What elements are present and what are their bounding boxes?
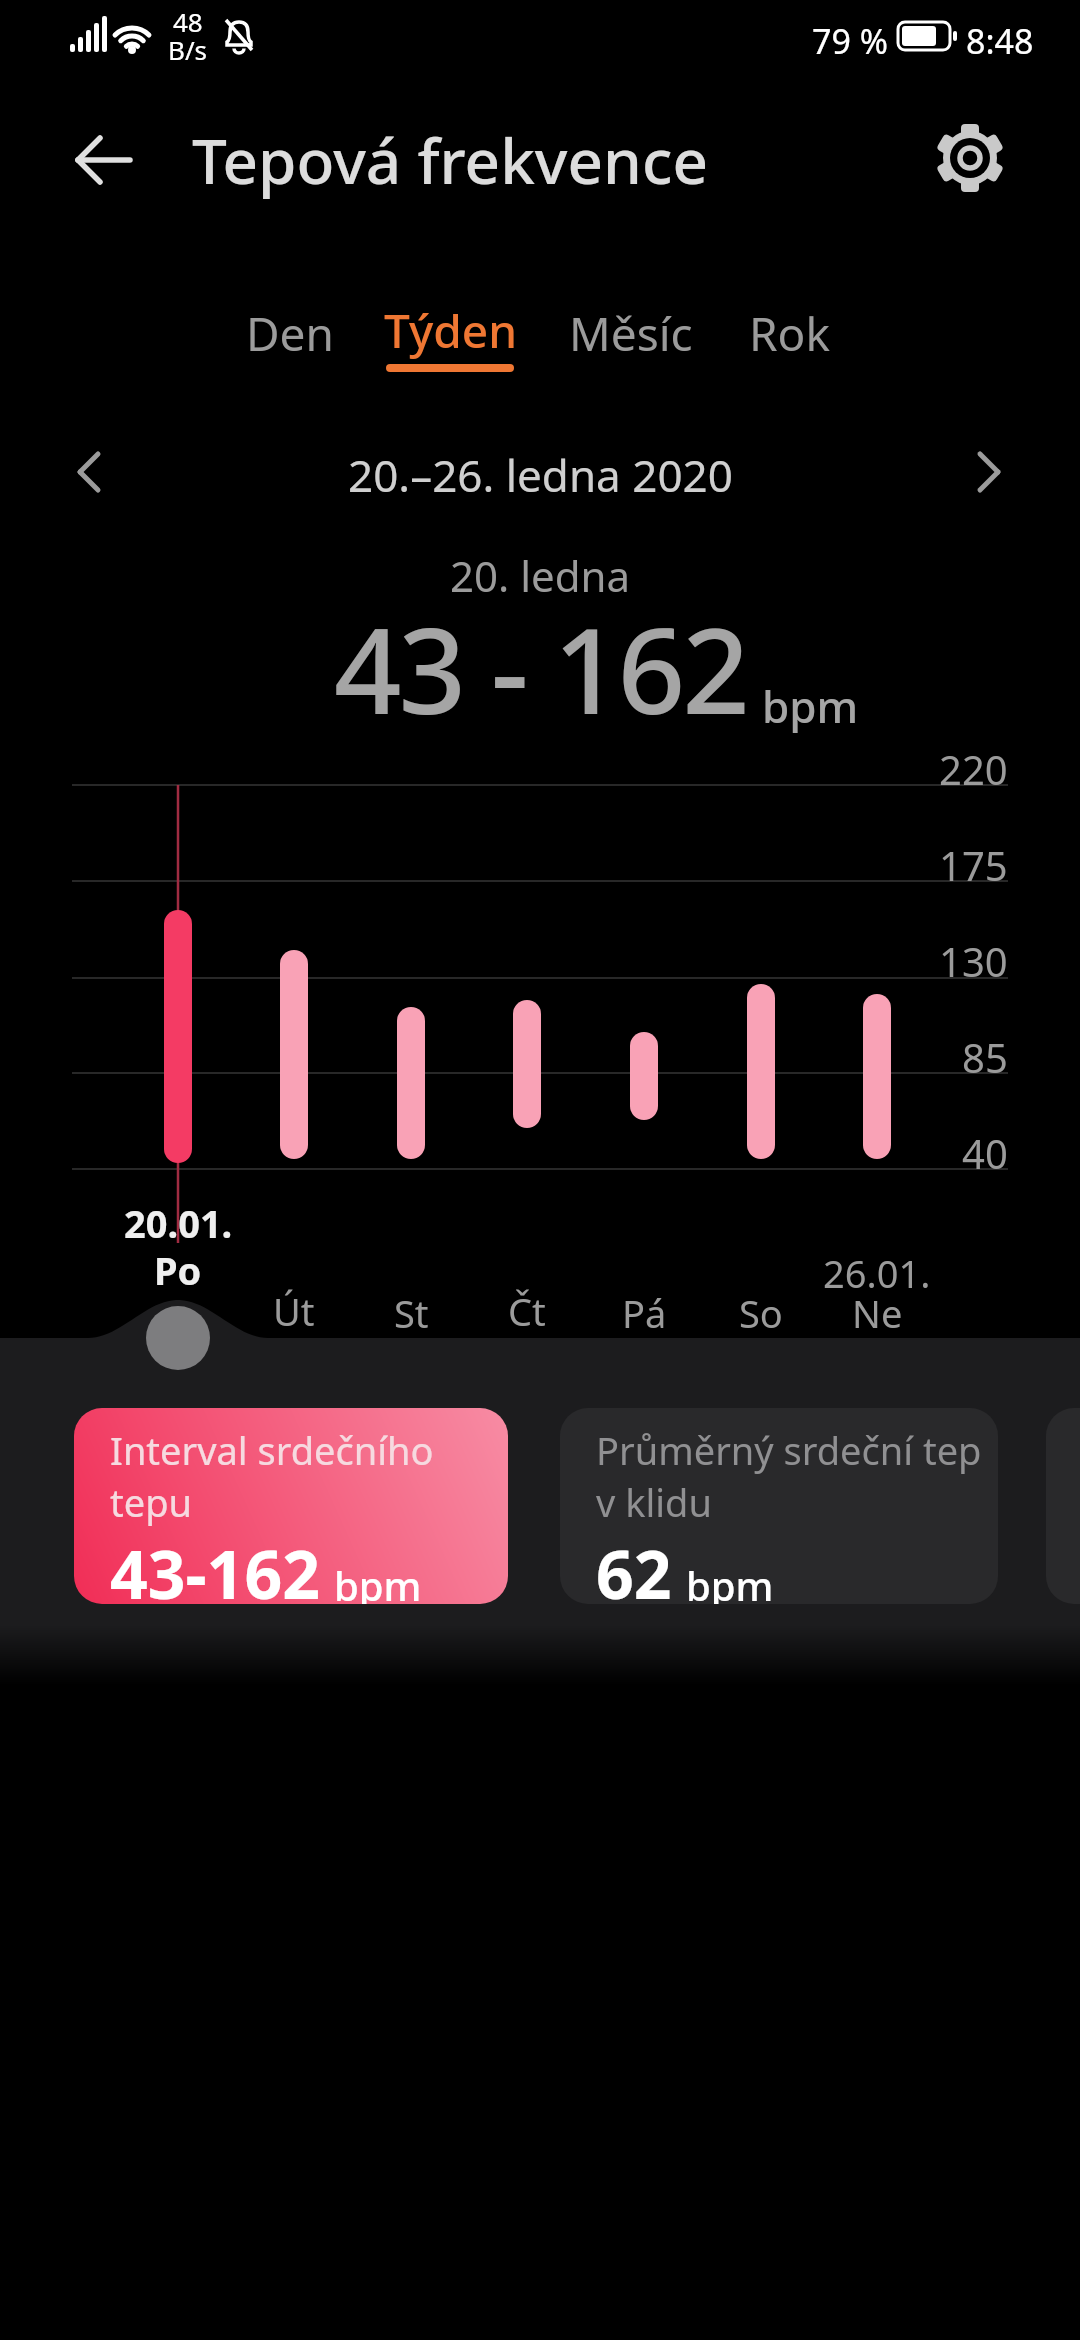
button[interactable] <box>72 128 136 192</box>
staticText: v klidu <box>596 1476 712 1526</box>
staticText: Týden <box>384 299 517 362</box>
staticText: 62 <box>596 1528 672 1604</box>
staticText: Út <box>273 1285 315 1337</box>
staticText: Pá <box>622 1287 667 1339</box>
staticText: 175 <box>939 838 1008 892</box>
staticText: 220 <box>939 742 1008 796</box>
staticText: bpm <box>334 1558 422 1604</box>
button[interactable] <box>710 288 870 372</box>
staticText: Ne <box>852 1287 903 1339</box>
staticText: 48 <box>173 4 203 39</box>
button[interactable] <box>936 124 1004 192</box>
staticText: Po <box>154 1244 202 1296</box>
staticText: 79 % <box>812 18 888 64</box>
staticText: 26.01. <box>823 1247 931 1299</box>
staticText: bpm <box>686 1558 774 1604</box>
staticText: Měsíc <box>569 302 693 365</box>
staticText: 85 <box>962 1030 1008 1084</box>
staticText: 130 <box>939 934 1008 988</box>
button[interactable] <box>74 450 106 494</box>
staticText: 20.–26. ledna 2020 <box>348 445 733 505</box>
staticText: So <box>739 1287 783 1339</box>
staticText: 8:48 <box>966 18 1034 64</box>
staticText: Interval srdečního <box>110 1424 434 1476</box>
button[interactable] <box>972 450 1004 494</box>
staticText: Tepová frekvence <box>192 118 708 202</box>
staticText: 40 <box>962 1126 1008 1180</box>
staticText: bpm <box>762 676 859 736</box>
staticText: 43-162 <box>110 1528 320 1604</box>
button[interactable]: Průměrný srdeční tep <box>560 1408 998 1604</box>
staticText: Den <box>246 302 334 365</box>
staticText: St <box>394 1287 429 1339</box>
staticText: tepu <box>110 1476 193 1526</box>
staticText: 20. ledna <box>450 547 631 604</box>
staticText: Čt <box>508 1285 546 1337</box>
staticText: Rok <box>749 302 831 365</box>
staticText: Průměrný srdeční tep <box>596 1424 982 1476</box>
button[interactable] <box>230 288 390 372</box>
staticText: B/s <box>168 32 208 67</box>
button[interactable]: Interval srdečního <box>74 1408 508 1604</box>
staticText: 20.01. <box>124 1197 233 1249</box>
button[interactable] <box>541 288 721 372</box>
button[interactable]: Týden <box>370 288 530 372</box>
staticText: 43 - 162 <box>334 588 747 749</box>
